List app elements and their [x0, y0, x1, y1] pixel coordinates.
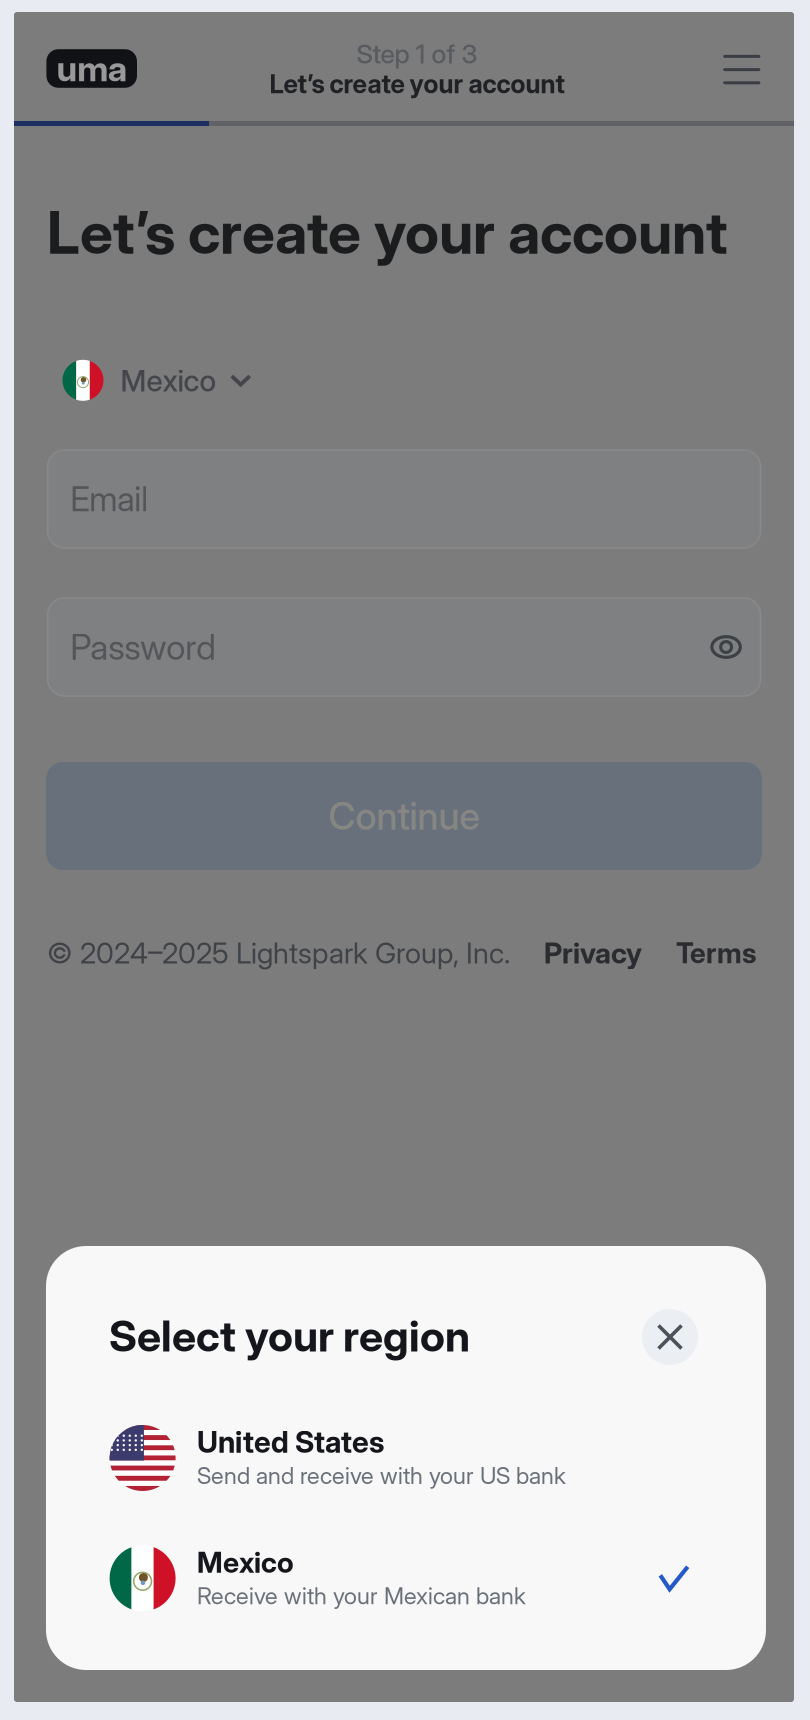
button[interactable]: uma home: [46, 49, 137, 88]
staticText: Mexico: [120, 363, 216, 399]
staticText: Let’s create your account: [47, 197, 728, 268]
button[interactable]: Terms: [676, 936, 756, 970]
button[interactable]: Mexico: [110, 1545, 712, 1611]
staticText: Email: [70, 479, 148, 519]
staticText: Receive with your Mexican bank: [197, 1582, 526, 1610]
staticText: uma: [57, 47, 127, 90]
staticText: Step 1 of 3: [356, 38, 477, 70]
button[interactable]: Show password: [699, 620, 753, 674]
button[interactable]: Close: [642, 1309, 698, 1365]
staticText: Mexico: [197, 1545, 294, 1580]
button[interactable]: United States: [110, 1425, 712, 1491]
staticText: Terms: [676, 936, 756, 970]
button[interactable]: Privacy: [544, 936, 642, 970]
button[interactable]: Continue: [46, 762, 762, 870]
button[interactable]: Mexico: [62, 358, 272, 404]
staticText: Continue: [328, 793, 479, 839]
button[interactable]: Menu: [711, 39, 773, 101]
staticText: Password: [70, 626, 216, 668]
staticText: United States: [197, 1424, 384, 1460]
staticText: © 2024–2025 Lightspark Group, Inc.: [47, 935, 510, 970]
staticText: Let’s create your account: [269, 68, 564, 99]
staticText: Privacy: [544, 936, 642, 970]
staticText: Select your region: [109, 1310, 470, 1362]
staticText: Send and receive with your US bank: [197, 1461, 566, 1490]
